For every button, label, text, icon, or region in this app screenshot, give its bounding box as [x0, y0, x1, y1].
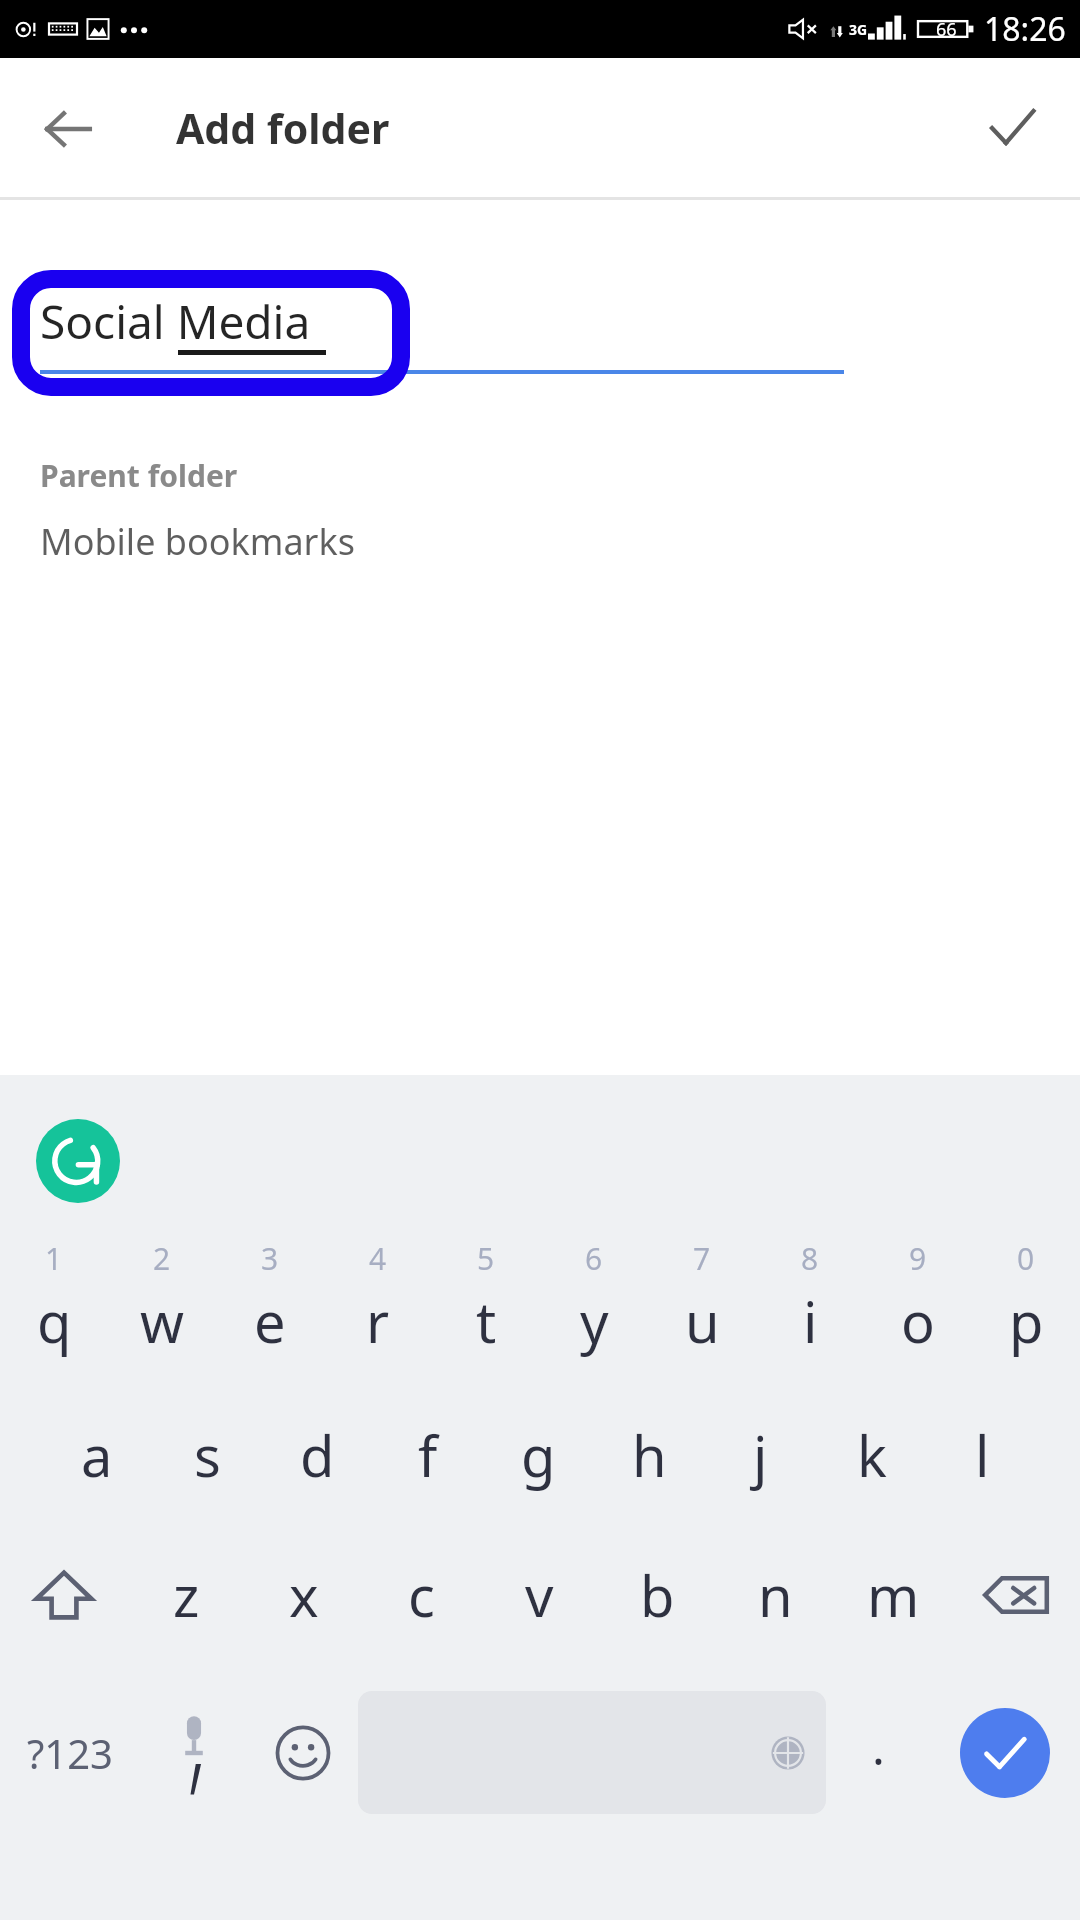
staticText: a — [81, 1417, 113, 1493]
staticText: c — [408, 1557, 435, 1633]
staticText: o — [901, 1283, 935, 1359]
button[interactable]: g — [483, 1385, 594, 1525]
button[interactable]: Voice input — [140, 1665, 248, 1840]
staticText: n — [758, 1557, 793, 1633]
staticText: g — [521, 1417, 556, 1493]
staticText: 4 — [369, 1238, 387, 1279]
button[interactable]: b — [598, 1525, 716, 1665]
button[interactable]: d — [262, 1385, 372, 1525]
staticText: Mobile bookmarks — [40, 517, 355, 566]
staticText: 0 — [1017, 1238, 1035, 1279]
staticText: l — [975, 1417, 990, 1493]
button[interactable]: j — [705, 1385, 816, 1525]
staticText: 5 — [477, 1238, 495, 1279]
button[interactable]: 1 — [0, 1220, 108, 1385]
staticText: . — [872, 1714, 885, 1779]
staticText: p — [1009, 1283, 1044, 1359]
button[interactable]: f — [372, 1385, 483, 1525]
button[interactable]: a — [42, 1385, 152, 1525]
button[interactable]: c — [362, 1525, 480, 1665]
button[interactable]: 9 — [864, 1220, 972, 1385]
button[interactable]: n — [716, 1525, 834, 1665]
button[interactable]: k — [816, 1385, 927, 1525]
button[interactable]: l — [927, 1385, 1038, 1525]
button[interactable]: 3 — [216, 1220, 324, 1385]
button[interactable]: . — [826, 1665, 930, 1840]
staticText: u — [685, 1283, 720, 1359]
button[interactable]: Save folder — [970, 86, 1054, 170]
staticText: t — [476, 1283, 497, 1359]
staticText: i — [803, 1283, 818, 1359]
staticText: 6 — [585, 1238, 603, 1279]
button[interactable]: ?123 — [0, 1665, 140, 1840]
staticText: k — [857, 1417, 887, 1493]
button[interactable]: z — [128, 1525, 245, 1665]
button[interactable]: 2 — [108, 1220, 216, 1385]
staticText: b — [640, 1557, 675, 1633]
button[interactable]: 8 — [756, 1220, 864, 1385]
staticText: v — [525, 1557, 554, 1633]
staticText: d — [300, 1417, 335, 1493]
staticText: 3 — [261, 1238, 279, 1279]
button[interactable]: 7 — [648, 1220, 756, 1385]
button[interactable]: 5 — [432, 1220, 540, 1385]
staticText: h — [632, 1417, 667, 1493]
staticText: 66 — [936, 17, 957, 42]
staticText: y — [580, 1283, 609, 1359]
staticText: Parent folder — [40, 455, 238, 496]
button[interactable]: Back — [26, 86, 110, 170]
staticText: 3G — [849, 20, 868, 39]
staticText: ?123 — [27, 1726, 113, 1780]
button[interactable]: Emoji — [248, 1665, 358, 1840]
button[interactable]: x — [245, 1525, 362, 1665]
staticText: q — [37, 1283, 72, 1359]
staticText: x — [289, 1557, 319, 1633]
staticText: m — [867, 1557, 920, 1633]
staticText: 8 — [801, 1238, 819, 1279]
staticText: 2 — [153, 1238, 171, 1279]
button[interactable]: Grammarly — [36, 1119, 120, 1203]
button[interactable]: 0 — [972, 1220, 1080, 1385]
staticText: Add folder — [176, 100, 390, 156]
button[interactable]: Shift — [0, 1525, 128, 1665]
button[interactable]: 4 — [324, 1220, 432, 1385]
button[interactable]: Space — [358, 1691, 826, 1814]
staticText: s — [194, 1417, 221, 1493]
button[interactable]: h — [594, 1385, 705, 1525]
staticText: e — [254, 1283, 286, 1359]
button[interactable]: m — [834, 1525, 952, 1665]
button[interactable]: 6 — [540, 1220, 648, 1385]
staticText: j — [753, 1417, 768, 1493]
button[interactable]: Backspace — [952, 1525, 1080, 1665]
staticText: w — [140, 1283, 185, 1359]
button[interactable]: v — [480, 1525, 598, 1665]
staticText: z — [173, 1557, 200, 1633]
staticText: 9 — [909, 1238, 927, 1279]
button[interactable]: s — [152, 1385, 262, 1525]
staticText: Social Media — [40, 290, 311, 353]
button[interactable]: Mobile bookmarks — [40, 517, 355, 566]
staticText: 7 — [693, 1238, 711, 1279]
staticText: 1 — [45, 1238, 63, 1279]
staticText: 18:26 — [984, 7, 1066, 51]
button[interactable]: Done — [960, 1708, 1050, 1798]
staticText: r — [366, 1283, 390, 1359]
staticText: f — [418, 1417, 438, 1493]
